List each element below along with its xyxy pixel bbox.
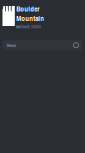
button[interactable]: Home <box>3 40 82 50</box>
staticText: Boulder <box>16 4 39 14</box>
staticText: MASSAGE STUDIO <box>16 25 41 29</box>
staticText: Mountain <box>16 13 44 23</box>
staticText: Home <box>7 42 16 48</box>
